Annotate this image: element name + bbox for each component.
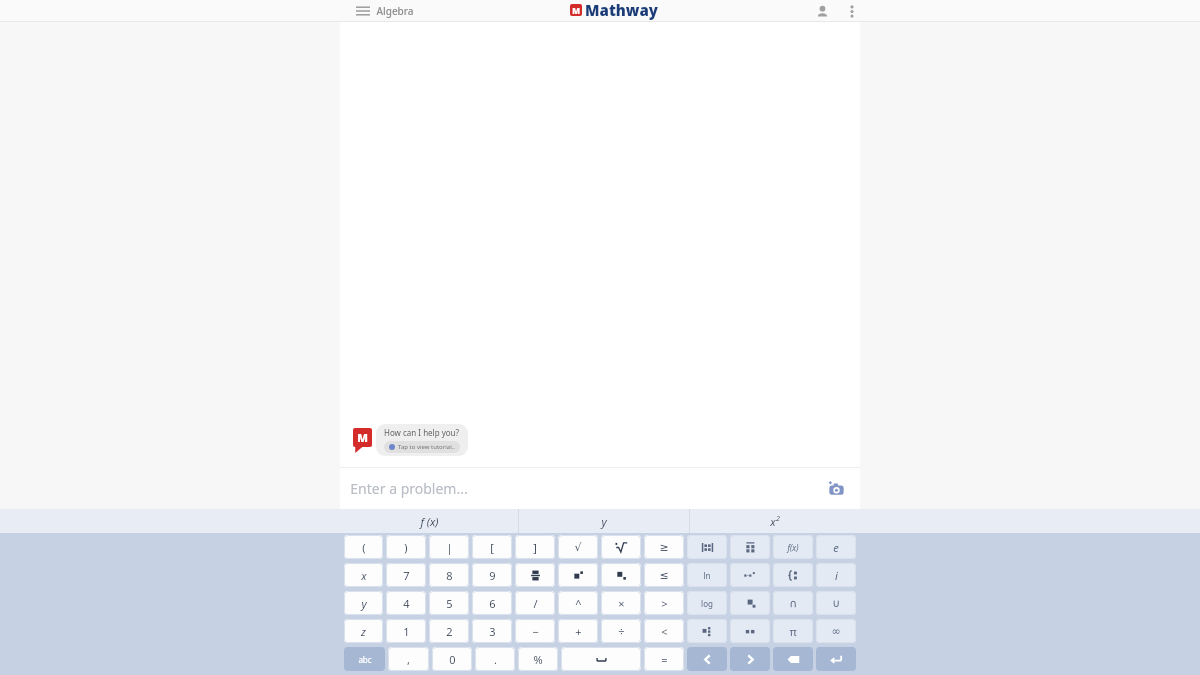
button[interactable]: ^ xyxy=(558,591,598,615)
button[interactable]: log xyxy=(687,591,727,615)
button[interactable]: 7 xyxy=(386,563,426,587)
button[interactable]: right xyxy=(730,647,770,671)
staticText: √ xyxy=(574,541,582,554)
button[interactable]: More options xyxy=(842,1,862,21)
staticText: 5 xyxy=(446,596,453,611)
button[interactable]: ∞ xyxy=(816,619,856,643)
button[interactable]: ln xyxy=(687,563,727,587)
button[interactable]: > xyxy=(644,591,684,615)
staticText: ∪ xyxy=(832,597,841,610)
button[interactable]: ] xyxy=(515,535,555,559)
button[interactable]: / xyxy=(515,591,555,615)
staticText: . xyxy=(494,652,497,667)
staticText: ] xyxy=(533,540,537,555)
button[interactable]: ≥ xyxy=(644,535,684,559)
button[interactable]: 2 xyxy=(429,619,469,643)
staticText: abc xyxy=(358,654,372,665)
button[interactable]: ∩ xyxy=(773,591,813,615)
button[interactable]: matA xyxy=(687,535,727,559)
staticText: = xyxy=(661,652,668,667)
button[interactable]: piece xyxy=(773,563,813,587)
button[interactable]: x xyxy=(690,509,860,533)
button[interactable]: ( xyxy=(344,535,383,559)
staticText: 7 xyxy=(403,568,410,583)
button[interactable]: , xyxy=(388,647,429,671)
button[interactable]: 1 xyxy=(386,619,426,643)
button[interactable]: = xyxy=(644,647,684,671)
button[interactable]: Scan problem with camera xyxy=(825,478,847,500)
staticText: f(x) xyxy=(787,542,799,553)
button[interactable]: − xyxy=(515,619,555,643)
button[interactable]: . xyxy=(475,647,515,671)
button[interactable]: ∪ xyxy=(816,591,856,615)
button[interactable]: < xyxy=(644,619,684,643)
button[interactable]: 0 xyxy=(432,647,472,671)
button[interactable]: logb xyxy=(730,591,770,615)
button[interactable]: 4 xyxy=(386,591,426,615)
staticText: Tap to view tutorial.. xyxy=(398,443,455,451)
button[interactable]: ≤ xyxy=(644,563,684,587)
button[interactable]: space xyxy=(561,647,641,671)
button[interactable]: z xyxy=(344,619,383,643)
button[interactable]: e xyxy=(816,535,856,559)
button[interactable]: enter xyxy=(816,647,856,671)
button[interactable]: + xyxy=(558,619,598,643)
button[interactable]: left xyxy=(687,647,727,671)
staticText: ) xyxy=(404,540,408,555)
button[interactable]: √ xyxy=(558,535,598,559)
staticText: y xyxy=(601,514,607,529)
staticText: ÷ xyxy=(618,624,625,639)
staticText: × xyxy=(618,596,625,611)
staticText: 9 xyxy=(489,568,496,583)
button[interactable]: ) xyxy=(386,535,426,559)
staticText: | xyxy=(446,540,453,555)
staticText: a Chegg service xyxy=(599,20,629,22)
button[interactable]: [ xyxy=(472,535,512,559)
button[interactable]: i xyxy=(816,563,856,587)
button[interactable]: pow xyxy=(558,563,598,587)
button[interactable]: f(x) xyxy=(773,535,813,559)
button[interactable]: How can I help you? xyxy=(376,424,468,456)
staticText: + xyxy=(575,624,582,639)
staticText: > xyxy=(661,596,668,611)
button[interactable]: grid1 xyxy=(687,619,727,643)
button[interactable]: 5 xyxy=(429,591,469,615)
button[interactable]: grid2 xyxy=(730,619,770,643)
button[interactable]: 3 xyxy=(472,619,512,643)
button[interactable]: π xyxy=(773,619,813,643)
button[interactable]: Algebra xyxy=(352,1,418,21)
button[interactable]: % xyxy=(518,647,558,671)
button[interactable]: ÷ xyxy=(601,619,641,643)
staticText: ≥ xyxy=(659,541,669,554)
button[interactable]: sci xyxy=(730,563,770,587)
staticText: 2 xyxy=(776,514,780,524)
button[interactable]: frac xyxy=(515,563,555,587)
button[interactable]: 8 xyxy=(429,563,469,587)
staticText: ^ xyxy=(575,596,582,611)
staticText: ∞ xyxy=(831,625,841,638)
staticText: 2 xyxy=(446,624,453,639)
button[interactable]: y xyxy=(519,509,689,533)
button[interactable]: y xyxy=(344,591,383,615)
button[interactable]: sub xyxy=(601,563,641,587)
button[interactable]: × xyxy=(601,591,641,615)
button[interactable]: nroot xyxy=(601,535,641,559)
button[interactable]: f (x) xyxy=(340,509,518,533)
button[interactable]: Enter a problem... xyxy=(340,468,860,509)
staticText: z xyxy=(361,624,366,639)
button[interactable]: Account xyxy=(811,0,833,22)
staticText: log xyxy=(701,598,713,609)
staticText: − xyxy=(532,624,539,639)
staticText: x xyxy=(361,568,367,583)
button[interactable]: matB xyxy=(730,535,770,559)
button[interactable]: 6 xyxy=(472,591,512,615)
button[interactable]: | xyxy=(429,535,469,559)
button[interactable]: x xyxy=(344,563,383,587)
button[interactable]: abc xyxy=(344,647,385,671)
staticText: x xyxy=(770,514,776,529)
staticText: 1 xyxy=(403,624,410,639)
staticText: Mathway xyxy=(585,0,658,20)
button[interactable]: 9 xyxy=(472,563,512,587)
staticText: 6 xyxy=(489,596,496,611)
button[interactable]: bksp xyxy=(773,647,813,671)
